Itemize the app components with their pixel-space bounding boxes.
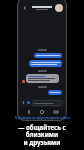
button[interactable]: Settings bbox=[52, 108, 60, 116]
button[interactable] bbox=[32, 100, 63, 106]
button[interactable]: Calls bbox=[38, 108, 46, 116]
staticText: Личные и групповые чаты bbox=[14, 115, 71, 121]
button[interactable] bbox=[48, 90, 62, 95]
button[interactable] bbox=[34, 53, 62, 58]
button[interactable]: Emoji bbox=[26, 100, 31, 105]
button[interactable] bbox=[26, 74, 59, 83]
button[interactable]: Contact avatar bbox=[22, 80, 25, 83]
button[interactable]: Chats bbox=[25, 108, 33, 116]
staticText: — общайтесь с близкими и друзьями bbox=[18, 123, 66, 147]
button[interactable] bbox=[29, 60, 62, 67]
button[interactable]: Attach file bbox=[21, 100, 26, 105]
button[interactable]: Back bbox=[21, 4, 28, 11]
button[interactable]: Profile bbox=[55, 4, 63, 12]
